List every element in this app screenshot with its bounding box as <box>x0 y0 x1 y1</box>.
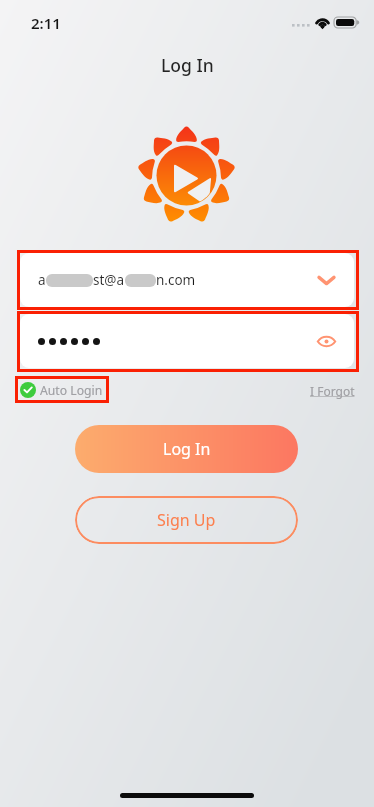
staticText: I Forgot <box>310 383 355 399</box>
button[interactable]: Auto Login <box>20 382 103 398</box>
staticText: n.com <box>156 271 196 289</box>
staticText: Auto Login <box>40 382 103 398</box>
button[interactable]: Log In <box>75 425 298 473</box>
staticText: Log In <box>161 53 214 77</box>
staticText: st@a <box>93 271 125 289</box>
staticText: Sign Up <box>157 509 216 531</box>
staticText: Log In <box>163 438 211 460</box>
staticText: a <box>38 271 46 289</box>
button[interactable]: Show password <box>20 314 354 368</box>
button[interactable]: Show password <box>312 327 340 355</box>
button[interactable]: Show saved accounts <box>312 266 340 294</box>
button[interactable]: Sign Up <box>75 496 298 544</box>
staticText: 2:11 <box>31 13 61 33</box>
button[interactable]: I Forgot <box>310 383 355 399</box>
button[interactable]: a <box>20 253 354 307</box>
